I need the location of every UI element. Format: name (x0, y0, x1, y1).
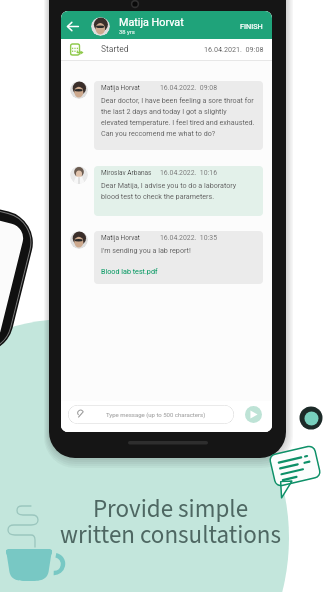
staticText: Matija Horvat (101, 84, 140, 92)
staticText: Blood lab test.pdf (101, 267, 158, 275)
button[interactable]: Matija Horvat (94, 231, 263, 284)
staticText: I'm sending you a lab report! (101, 246, 191, 254)
staticText: Type message (up to 500 characters) (106, 411, 206, 418)
staticText: 16.04.2021. 09:08 (204, 45, 264, 53)
staticText: Dear doctor, I have been feeling a sore … (101, 96, 255, 138)
button[interactable]: Back (66, 20, 79, 33)
button[interactable]: Send (245, 406, 262, 423)
staticText: 38 yrs (119, 29, 135, 36)
button[interactable]: FINISH (237, 20, 266, 33)
staticText: 16.04.2022. 10:35 (160, 234, 218, 242)
staticText: Dear Matija, I advise you to do a labora… (101, 181, 255, 201)
staticText: Started (101, 44, 129, 54)
staticText: Matija Horvat (101, 234, 140, 242)
button[interactable]: Miroslav Arbanas (94, 166, 263, 216)
button[interactable]: Type message (up to 500 characters) (68, 405, 234, 424)
staticText: Miroslav Arbanas (101, 169, 152, 177)
staticText: 16.04.2022. 09:08 (160, 84, 218, 92)
staticText: Provide simple written consultations (4, 491, 333, 553)
button[interactable]: Started (61, 39, 272, 60)
staticText: 16.04.2022. 10:16 (160, 169, 218, 177)
button[interactable]: Matija Horvat (94, 81, 263, 150)
staticText: FINISH (240, 22, 263, 31)
staticText: Matija Horvat (119, 16, 184, 29)
